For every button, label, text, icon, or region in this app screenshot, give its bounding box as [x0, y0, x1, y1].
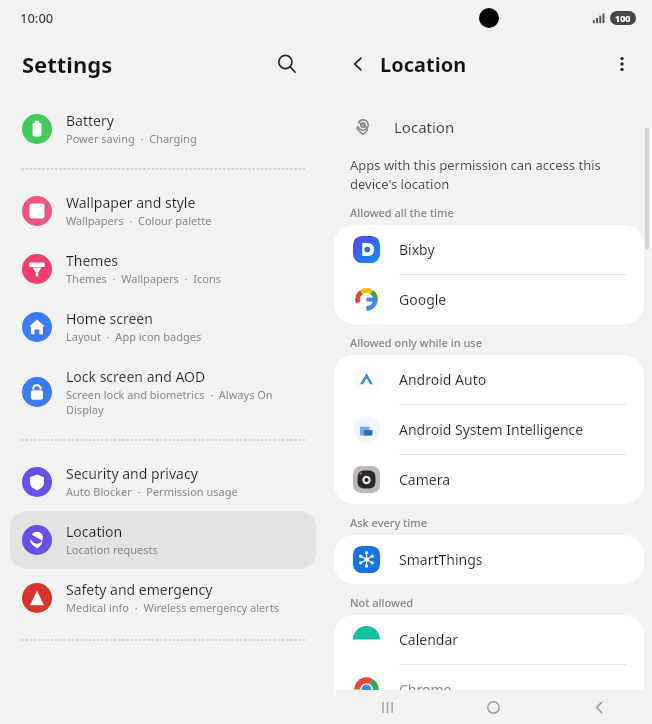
button[interactable]: Location	[10, 511, 316, 569]
button[interactable]: Home screen	[10, 298, 316, 356]
staticText: Wallpapers · Colour palette	[66, 213, 212, 228]
staticText: Location	[66, 522, 123, 541]
button[interactable]: Camera	[334, 455, 644, 504]
button[interactable]: Back	[340, 46, 376, 82]
button[interactable]: Home	[440, 690, 546, 724]
staticText: Location	[394, 117, 455, 137]
button[interactable]: Bixby	[334, 225, 644, 274]
button[interactable]: Calendar	[334, 615, 644, 664]
staticText: Medical info · Wireless emergency alerts	[66, 600, 280, 615]
button[interactable]: Android Auto	[334, 355, 644, 404]
staticText: Camera	[399, 470, 451, 489]
staticText: Lock screen and AOD	[66, 367, 206, 386]
button[interactable]: Search	[270, 47, 304, 81]
staticText: Bixby	[399, 240, 435, 259]
button[interactable]: Back	[546, 690, 652, 724]
button[interactable]: Google	[334, 275, 644, 324]
staticText: Location	[380, 51, 467, 78]
staticText: Allowed only while in use	[350, 335, 482, 350]
staticText: Android Auto	[399, 370, 487, 389]
staticText: Settings	[22, 49, 113, 79]
staticText: Themes	[66, 251, 119, 270]
staticText: 100	[615, 12, 631, 24]
staticText: Battery	[66, 111, 114, 130]
staticText: Power saving · Charging	[66, 131, 197, 146]
button[interactable]: Themes	[10, 240, 316, 298]
staticText: Allowed all the time	[350, 205, 454, 220]
button[interactable]: Lock screen and AOD	[10, 356, 316, 429]
staticText: 10:00	[20, 9, 54, 27]
staticText: Wallpaper and style	[66, 193, 196, 212]
button[interactable]: Wallpaper and style	[10, 182, 316, 240]
button[interactable]: SmartThings	[334, 535, 644, 584]
staticText: Safety and emergency	[66, 580, 213, 599]
staticText: Ask every time	[350, 515, 427, 530]
staticText: Android System Intelligence	[399, 420, 584, 439]
staticText: Auto Blocker · Permission usage	[66, 484, 238, 499]
button[interactable]: Recents	[335, 690, 440, 724]
staticText: Calendar	[399, 630, 459, 649]
button[interactable]: Security and privacy	[10, 453, 316, 511]
staticText: Layout · App icon badges	[66, 329, 202, 344]
staticText: SmartThings	[399, 550, 483, 569]
button[interactable]: Chrome	[334, 665, 644, 714]
button[interactable]: Battery	[10, 100, 316, 158]
staticText: Security and privacy	[66, 464, 198, 483]
staticText: Screen lock and biometrics · Always On D…	[66, 387, 304, 417]
staticText: Google	[399, 290, 447, 309]
button[interactable]: Android System Intelligence	[334, 405, 644, 454]
staticText: Chrome	[399, 680, 452, 699]
button[interactable]: More options	[604, 46, 640, 82]
staticText: Themes · Wallpapers · Icons	[66, 271, 221, 286]
staticText: Not allowed	[350, 595, 414, 610]
button[interactable]: Safety and emergency	[10, 569, 316, 627]
staticText: Location requests	[66, 542, 158, 557]
staticText: Apps with this permission can access thi…	[350, 156, 634, 193]
staticText: Home screen	[66, 309, 153, 328]
